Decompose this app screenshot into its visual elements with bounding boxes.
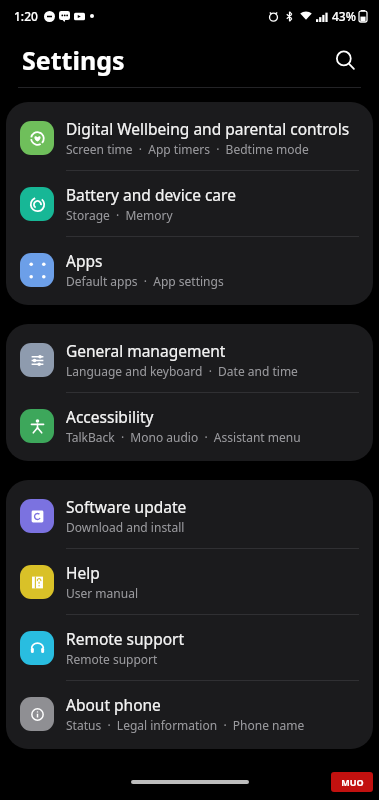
staticText: Storage · Memory xyxy=(66,207,173,223)
staticText: Download and install xyxy=(66,519,185,535)
staticText: Digital Wellbeing and parental controls xyxy=(66,118,350,139)
staticText: Apps xyxy=(66,250,103,271)
button[interactable]: Digital Wellbeing and parental controls xyxy=(6,105,373,170)
staticText: Software update xyxy=(66,496,187,517)
button[interactable]: Search xyxy=(327,42,363,78)
staticText: TalkBack · Mono audio · Assistant menu xyxy=(66,429,301,445)
staticText: Accessibility xyxy=(66,406,154,427)
button[interactable]: General management xyxy=(6,327,373,392)
staticText: Remote support xyxy=(66,628,185,649)
staticText: 43% xyxy=(332,8,356,24)
staticText: User manual xyxy=(66,585,138,601)
staticText: Screen time · App timers · Bedtime mode xyxy=(66,141,309,157)
staticText: 1:20 xyxy=(14,8,38,24)
staticText: Help xyxy=(66,562,100,583)
staticText: Status · Legal information · Phone name xyxy=(66,717,305,733)
button[interactable]: Help xyxy=(6,549,373,614)
button[interactable]: About phone xyxy=(6,681,373,746)
staticText: Remote support xyxy=(66,651,158,667)
button[interactable]: Accessibility xyxy=(6,393,373,458)
staticText: Default apps · App settings xyxy=(66,273,224,289)
button[interactable]: Software update xyxy=(6,483,373,548)
staticText: General management xyxy=(66,340,226,361)
staticText: Battery and device care xyxy=(66,184,236,205)
staticText: Settings xyxy=(22,43,125,77)
button[interactable]: Apps xyxy=(6,237,373,302)
staticText: MUO xyxy=(341,776,364,788)
staticText: About phone xyxy=(66,694,161,715)
staticText: Language and keyboard · Date and time xyxy=(66,363,298,379)
button[interactable]: Battery and device care xyxy=(6,171,373,236)
button[interactable]: Remote support xyxy=(6,615,373,680)
